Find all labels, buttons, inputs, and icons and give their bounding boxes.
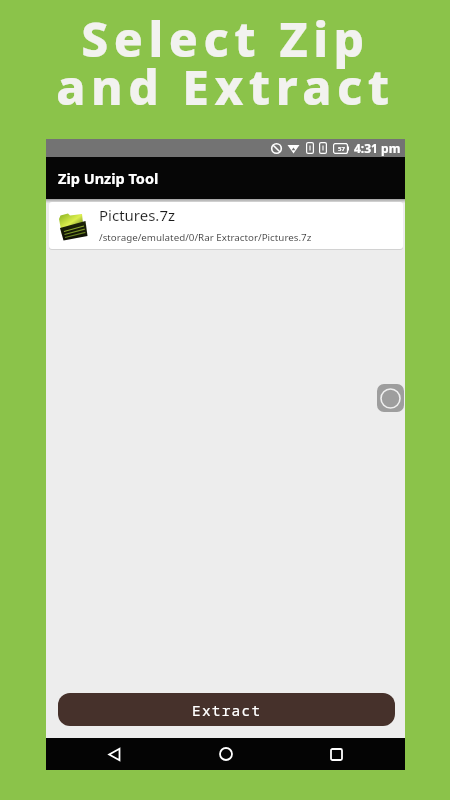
- staticText: 57: [338, 145, 345, 153]
- staticText: Pictures.7z: [99, 205, 176, 225]
- button[interactable]: [377, 384, 404, 412]
- staticText: Zip Unzip Tool: [58, 168, 159, 188]
- button[interactable]: Extract: [58, 693, 395, 726]
- button[interactable]: [281, 738, 392, 770]
- button[interactable]: [59, 738, 170, 770]
- staticText: 4:31 pm: [354, 140, 401, 156]
- button[interactable]: Pictures.7z: [49, 202, 403, 249]
- staticText: /storage/emulated/0/Rar Extractor/Pictur…: [99, 231, 312, 244]
- staticText: Extract: [192, 700, 262, 720]
- button[interactable]: [170, 738, 281, 770]
- staticText: Select Zip and Extract: [56, 6, 395, 119]
